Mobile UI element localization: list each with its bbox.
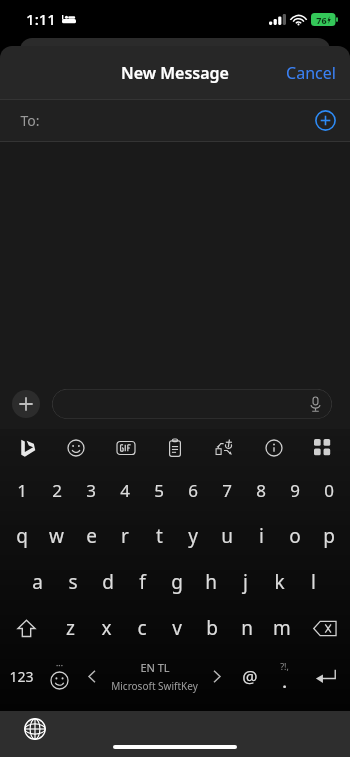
staticText: j — [243, 569, 248, 595]
staticText: t — [156, 523, 163, 549]
staticText: 76 — [316, 14, 327, 26]
staticText: 3 — [86, 479, 96, 502]
button[interactable]: Backspace — [299, 605, 350, 651]
button[interactable]: r — [108, 513, 142, 559]
button[interactable]: GIF — [109, 431, 143, 465]
button[interactable]: 0 — [312, 467, 346, 513]
staticText: 0 — [324, 479, 334, 502]
staticText: w — [49, 523, 64, 549]
button[interactable]: Enter — [302, 651, 350, 701]
button[interactable]: 3 — [74, 467, 108, 513]
staticText: New Message — [121, 62, 229, 84]
button[interactable]: j — [228, 559, 262, 605]
button[interactable]: ?!, — [267, 651, 302, 701]
staticText: 6 — [188, 479, 198, 502]
button[interactable]: Cancel — [272, 48, 350, 98]
button[interactable]: b — [194, 605, 229, 651]
button[interactable]: c — [124, 605, 159, 651]
button[interactable]: Next — [202, 651, 232, 701]
button[interactable]: 2 — [39, 467, 74, 513]
button[interactable]: 8 — [244, 467, 278, 513]
staticText: u — [221, 523, 233, 549]
button[interactable]: @ — [232, 651, 267, 701]
staticText: . — [282, 672, 287, 692]
staticText: 9 — [290, 479, 300, 502]
button[interactable]: Previous — [77, 651, 107, 701]
staticText: f — [139, 569, 146, 595]
staticText: 5 — [154, 479, 164, 502]
staticText: ••• — [56, 662, 63, 670]
button[interactable]: n — [229, 605, 264, 651]
button[interactable]: EN TL — [107, 651, 202, 701]
staticText: i — [259, 523, 264, 549]
staticText: x — [101, 615, 112, 641]
staticText: EN TL — [140, 660, 170, 675]
button[interactable]: To: — [0, 100, 350, 141]
button[interactable]: x — [88, 605, 124, 651]
staticText: 7 — [222, 479, 232, 502]
button[interactable]: Emoji keyboard — [42, 651, 77, 701]
button[interactable]: 1 — [4, 467, 39, 513]
button[interactable]: o — [278, 513, 312, 559]
staticText: b — [206, 615, 218, 641]
button[interactable]: a — [20, 559, 55, 605]
button[interactable]: h — [194, 559, 228, 605]
button[interactable] — [52, 389, 332, 419]
staticText: r — [121, 523, 129, 549]
staticText: @ — [242, 665, 258, 688]
staticText: e — [86, 523, 97, 549]
button[interactable]: w — [39, 513, 74, 559]
button[interactable]: Add contact — [315, 110, 336, 131]
staticText: h — [205, 569, 217, 595]
button[interactable]: Clipboard — [158, 431, 192, 465]
button[interactable]: l — [296, 559, 330, 605]
staticText: k — [274, 569, 285, 595]
button[interactable]: i — [244, 513, 278, 559]
button[interactable]: t — [142, 513, 176, 559]
button[interactable]: y — [176, 513, 210, 559]
staticText: q — [16, 523, 28, 549]
button[interactable]: Translate — [207, 431, 241, 465]
button[interactable]: k — [262, 559, 296, 605]
button[interactable]: g — [160, 559, 194, 605]
button[interactable]: More options — [306, 431, 340, 465]
staticText: g — [171, 569, 183, 595]
button[interactable]: 9 — [278, 467, 312, 513]
staticText: y — [188, 523, 198, 549]
button[interactable]: Info — [257, 431, 291, 465]
button[interactable]: e — [74, 513, 108, 559]
button[interactable]: 123 — [0, 651, 42, 701]
button[interactable]: d — [90, 559, 125, 605]
button[interactable]: Shift — [0, 605, 52, 651]
button[interactable]: u — [210, 513, 244, 559]
button[interactable]: 6 — [176, 467, 210, 513]
button[interactable]: Emoji — [59, 431, 93, 465]
button[interactable]: Change language — [20, 714, 50, 744]
staticText: p — [323, 523, 335, 549]
staticText: ?!, — [280, 660, 289, 672]
staticText: l — [311, 569, 316, 595]
button[interactable]: q — [4, 513, 39, 559]
staticText: To: — [20, 111, 40, 130]
staticText: z — [66, 615, 75, 641]
button[interactable]: f — [125, 559, 160, 605]
button[interactable]: m — [264, 605, 299, 651]
button[interactable]: p — [312, 513, 346, 559]
button[interactable]: z — [52, 605, 88, 651]
staticText: Cancel — [286, 62, 336, 84]
staticText: 1 — [17, 479, 27, 502]
button[interactable]: 5 — [142, 467, 176, 513]
staticText: n — [241, 615, 253, 641]
staticText: 123 — [9, 667, 34, 686]
button[interactable]: Add attachment — [12, 390, 40, 418]
button[interactable]: s — [55, 559, 90, 605]
staticText: Microsoft SwiftKey — [111, 679, 198, 693]
button[interactable]: 7 — [210, 467, 244, 513]
staticText: d — [102, 569, 114, 595]
staticText: 8 — [256, 479, 266, 502]
staticText: 2 — [52, 479, 62, 502]
staticText: a — [32, 569, 43, 595]
button[interactable]: Bing search — [10, 431, 44, 465]
button[interactable]: v — [159, 605, 194, 651]
button[interactable]: 4 — [108, 467, 142, 513]
